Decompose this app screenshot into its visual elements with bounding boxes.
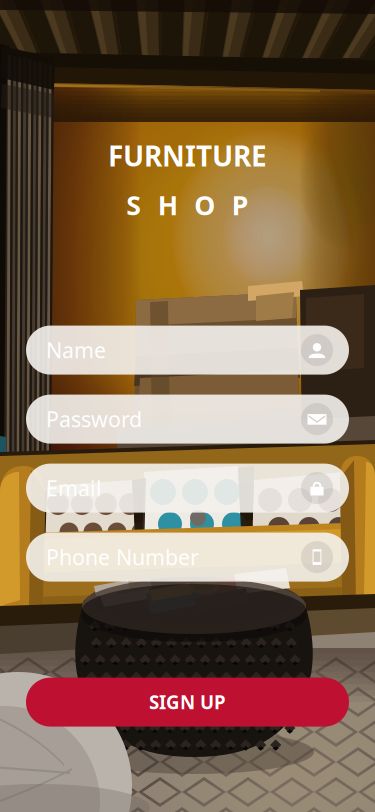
staticText: Name <box>46 336 106 364</box>
button[interactable]: SIGN UP <box>26 678 349 727</box>
staticText: Phone Number <box>46 543 199 571</box>
staticText: H <box>158 187 178 223</box>
staticText: P <box>232 187 249 223</box>
button[interactable]: Email <box>26 464 349 513</box>
button[interactable]: Phone Number <box>26 533 349 582</box>
button[interactable]: Password <box>26 395 349 444</box>
button[interactable]: Name <box>26 326 349 375</box>
staticText: S <box>126 187 141 223</box>
staticText: FURNITURE <box>108 137 267 174</box>
staticText: Password <box>46 405 142 433</box>
staticText: O <box>194 187 215 223</box>
staticText: Email <box>46 474 102 502</box>
staticText: SIGN UP <box>149 690 226 714</box>
